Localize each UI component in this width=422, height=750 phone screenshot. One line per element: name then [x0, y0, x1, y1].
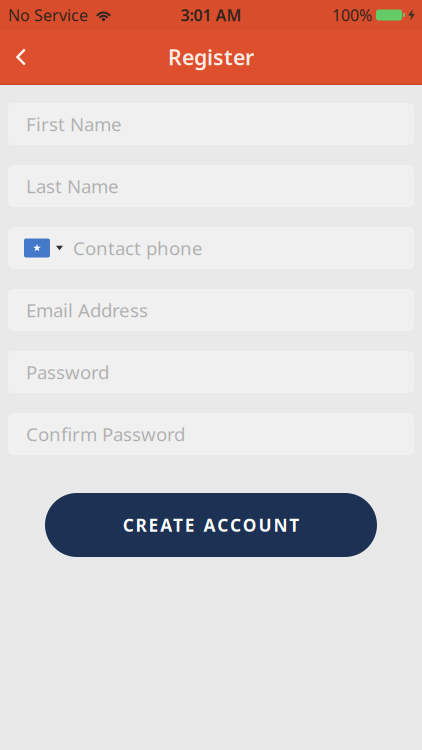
- staticText: Register: [168, 43, 254, 71]
- staticText: CREATE ACCOUNT: [123, 513, 299, 536]
- staticText: No Service: [8, 4, 88, 26]
- staticText: Confirm Password: [26, 422, 185, 446]
- button[interactable]: Back: [0, 32, 26, 82]
- staticText: 3:01 AM: [180, 4, 241, 26]
- button[interactable]: Contact phone: [8, 227, 414, 269]
- button[interactable]: Confirm Password: [8, 413, 414, 455]
- button[interactable]: Password: [8, 351, 414, 393]
- staticText: Last Name: [26, 174, 119, 198]
- staticText: Email Address: [26, 298, 148, 322]
- staticText: Contact phone: [73, 236, 203, 260]
- staticText: First Name: [26, 112, 122, 136]
- staticText: Password: [26, 360, 109, 384]
- button[interactable]: CREATE ACCOUNT: [45, 493, 377, 557]
- button[interactable]: Email Address: [8, 289, 414, 331]
- button[interactable]: First Name: [8, 103, 414, 145]
- button[interactable]: Last Name: [8, 165, 414, 207]
- staticText: 100%: [332, 4, 372, 26]
